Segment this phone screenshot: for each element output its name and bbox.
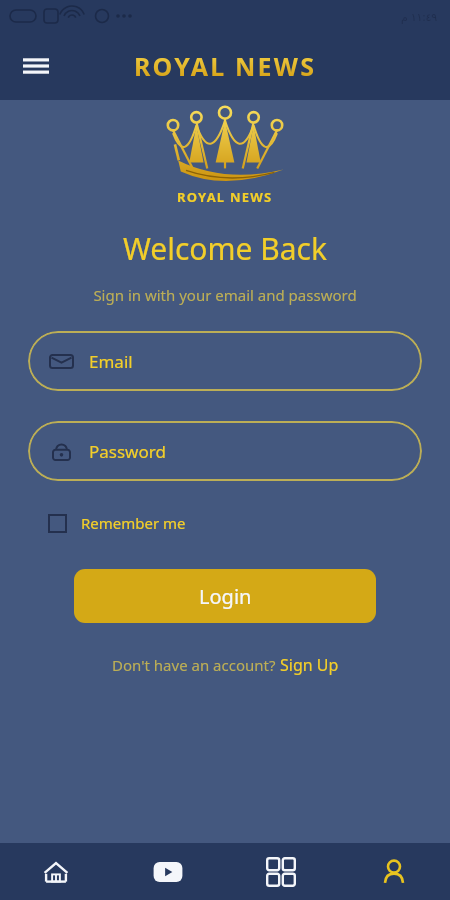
button[interactable]: Categories xyxy=(224,843,337,900)
button[interactable]: Profile xyxy=(337,843,450,900)
button[interactable]: Password xyxy=(28,421,422,481)
staticText: Sign in with your email and password xyxy=(93,285,357,305)
staticText: Don't have an account? xyxy=(112,655,280,675)
staticText: Sign Up xyxy=(280,654,339,676)
staticText: ١١:٤٩ م xyxy=(401,9,438,24)
button[interactable]: Don't have an account? xyxy=(104,650,347,680)
button[interactable]: Login xyxy=(74,569,376,623)
button[interactable]: Home xyxy=(0,843,112,900)
staticText: ROYAL NEWS xyxy=(134,49,317,83)
button[interactable]: Menu xyxy=(14,44,58,88)
staticText: Remember me xyxy=(81,513,186,533)
button[interactable]: Remember me xyxy=(28,507,206,539)
staticText: Password xyxy=(89,440,166,463)
staticText: Welcome Back xyxy=(123,228,328,269)
staticText: Login xyxy=(199,583,252,610)
staticText: Email xyxy=(89,350,133,373)
button[interactable]: Email xyxy=(28,331,422,391)
staticText: ROYAL NEWS xyxy=(177,188,273,206)
button[interactable]: Videos xyxy=(112,843,224,900)
